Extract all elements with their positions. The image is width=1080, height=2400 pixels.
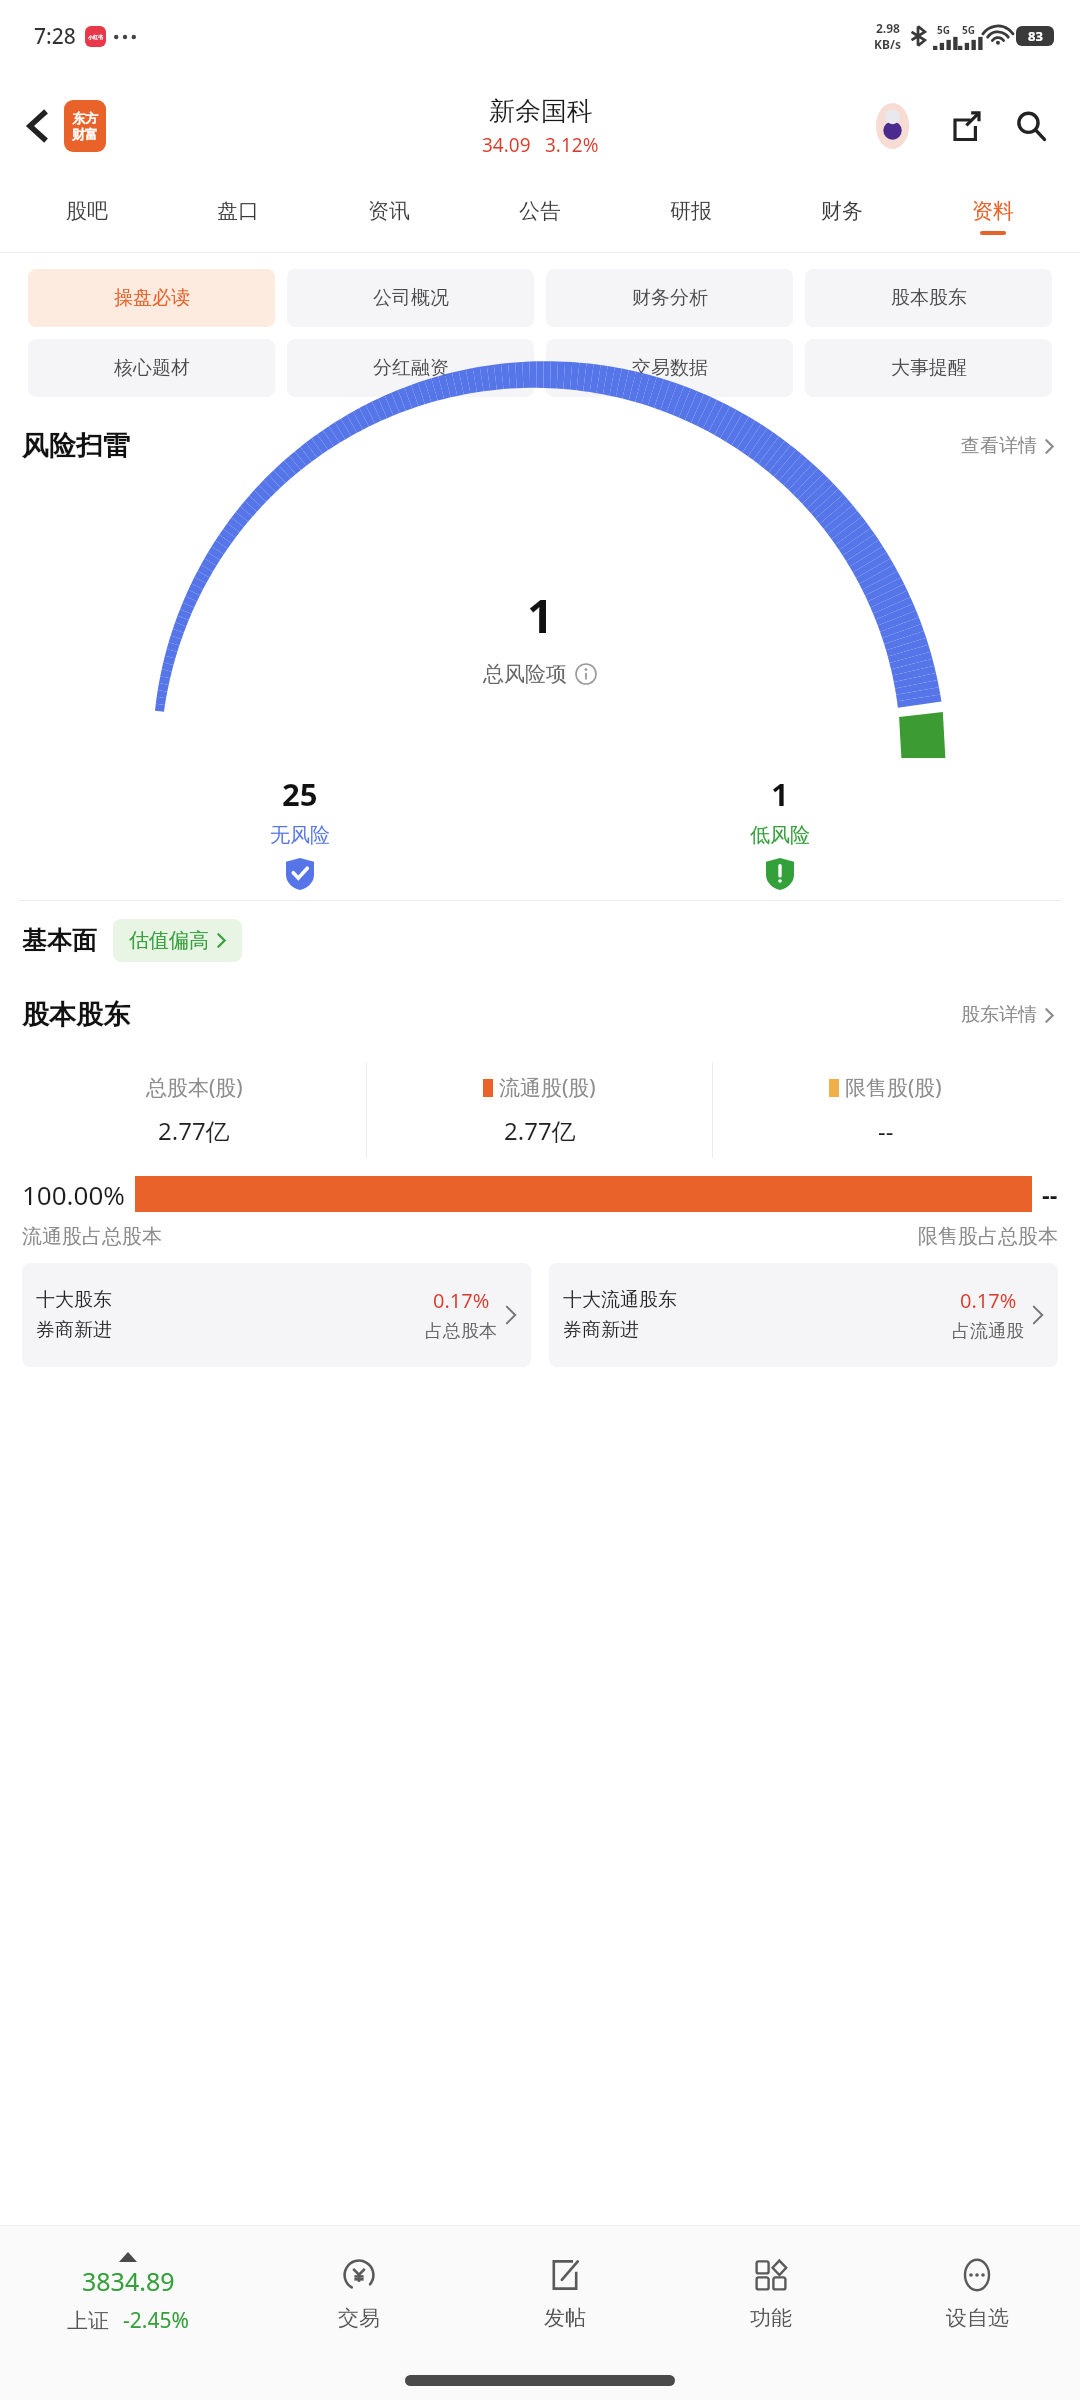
staticText: 总风险项 <box>483 661 567 687</box>
staticText: 财富 <box>72 126 98 142</box>
staticText: 5G <box>962 23 975 37</box>
staticText: 上证 <box>67 2308 109 2334</box>
staticText: 股东详情 <box>961 1003 1037 1027</box>
staticText: -2.45% <box>123 2306 189 2335</box>
staticText: 公司概况 <box>373 286 449 310</box>
button[interactable]: 十大股东 <box>22 1263 531 1367</box>
button[interactable]: 1 <box>540 773 1020 890</box>
staticText: 设自选 <box>946 2305 1009 2331</box>
staticText: 100.00% <box>22 1177 125 1212</box>
button[interactable]: 股吧 <box>12 180 162 252</box>
staticText: 风险扫雷 <box>22 429 130 463</box>
staticText: 2.98 <box>876 20 900 36</box>
button[interactable]: 资讯 <box>313 180 464 252</box>
staticText: 0.17% <box>433 1287 490 1314</box>
button[interactable]: 研报 <box>615 180 766 252</box>
button[interactable]: 交易 <box>256 2255 462 2331</box>
button[interactable]: 财务分析 <box>546 269 793 327</box>
staticText: 2.77亿 <box>504 1114 576 1147</box>
button[interactable]: 3834.89 <box>0 2252 256 2335</box>
staticText: 占总股本 <box>425 1320 497 1343</box>
button[interactable]: 十大流通股东 <box>549 1263 1058 1367</box>
staticText: 股吧 <box>66 198 108 224</box>
staticText: 东方 <box>72 110 98 126</box>
button[interactable]: 操盘必读 <box>28 269 275 327</box>
staticText: 资讯 <box>368 198 410 224</box>
staticText: 股本股东 <box>22 998 130 1032</box>
staticText: 限售股占总股本 <box>918 1224 1058 1249</box>
staticText: 交易数据 <box>632 356 708 380</box>
button[interactable]: 返回 <box>18 92 114 160</box>
staticText: 无风险 <box>270 823 330 848</box>
staticText: 查看详情 <box>961 434 1037 458</box>
button[interactable]: 分享 <box>942 101 992 151</box>
button[interactable]: 财务 <box>766 180 917 252</box>
button[interactable]: 设自选 <box>874 2255 1080 2331</box>
button[interactable]: 估值偏高 <box>113 919 242 962</box>
staticText: 流通股(股) <box>499 1073 596 1102</box>
button[interactable]: 公告 <box>464 180 615 252</box>
staticText: 发帖 <box>544 2305 586 2331</box>
button[interactable]: 股东详情 <box>957 999 1058 1031</box>
staticText: 7:28 <box>34 22 76 51</box>
button[interactable]: 发帖 <box>462 2255 668 2331</box>
button[interactable]: 股本股东 <box>805 269 1052 327</box>
staticText: 盘口 <box>217 198 259 224</box>
staticText: 资料 <box>972 198 1014 224</box>
staticText: 1 <box>527 584 554 647</box>
staticText: 1 <box>771 773 789 815</box>
button[interactable]: 大事提醒 <box>805 339 1052 397</box>
staticText: 估值偏高 <box>129 928 209 953</box>
staticText: 低风险 <box>750 823 810 848</box>
staticText: 券商新进 <box>36 1318 112 1342</box>
other: 返回 <box>26 110 48 142</box>
button[interactable]: 功能 <box>668 2255 874 2331</box>
button[interactable]: 查看详情 <box>957 430 1058 462</box>
staticText: 基本面 <box>22 925 97 956</box>
staticText: 财务分析 <box>632 286 708 310</box>
staticText: 研报 <box>670 198 712 224</box>
staticText: 3.12% <box>545 132 599 158</box>
staticText: 财务 <box>821 198 863 224</box>
staticText: 3834.89 <box>82 2264 175 2298</box>
staticText: KB/s <box>874 36 901 52</box>
staticText: 十大股东 <box>36 1288 112 1312</box>
button[interactable]: 公司概况 <box>287 269 534 327</box>
staticText: 券商新进 <box>563 1318 639 1342</box>
staticText: 交易 <box>338 2305 380 2331</box>
button[interactable]: 25 <box>60 773 540 890</box>
staticText: 核心题材 <box>114 356 190 380</box>
staticText: 股本股东 <box>891 286 967 310</box>
staticText: 5G <box>937 23 950 37</box>
staticText: 十大流通股东 <box>563 1288 677 1312</box>
staticText: 占流通股 <box>952 1320 1024 1343</box>
staticText: 限售股(股) <box>845 1073 942 1102</box>
staticText: 操盘必读 <box>114 286 190 310</box>
staticText: 0.17% <box>960 1287 1017 1314</box>
button[interactable]: AI助手 <box>874 101 924 151</box>
button[interactable]: 交易数据 <box>546 339 793 397</box>
staticText: -- <box>1042 1178 1058 1211</box>
staticText: 小红书 <box>88 34 103 40</box>
staticText: 25 <box>282 773 318 815</box>
button[interactable]: 分红融资 <box>287 339 534 397</box>
staticText: 总股本(股) <box>146 1073 243 1102</box>
staticText: 34.09 <box>482 132 531 158</box>
staticText: 大事提醒 <box>891 356 967 380</box>
staticText: 83 <box>1028 27 1043 45</box>
button[interactable]: 核心题材 <box>28 339 275 397</box>
staticText: 新余国科 <box>489 95 593 128</box>
staticText: 分红融资 <box>373 356 449 380</box>
staticText: -- <box>878 1114 894 1147</box>
staticText: 流通股占总股本 <box>22 1224 162 1249</box>
staticText: 功能 <box>750 2305 792 2331</box>
button[interactable]: 资料 <box>917 180 1068 252</box>
staticText: 2.77亿 <box>158 1114 230 1147</box>
button[interactable]: 搜索 <box>1006 101 1056 151</box>
button[interactable]: 盘口 <box>162 180 313 252</box>
staticText: 公告 <box>519 198 561 224</box>
